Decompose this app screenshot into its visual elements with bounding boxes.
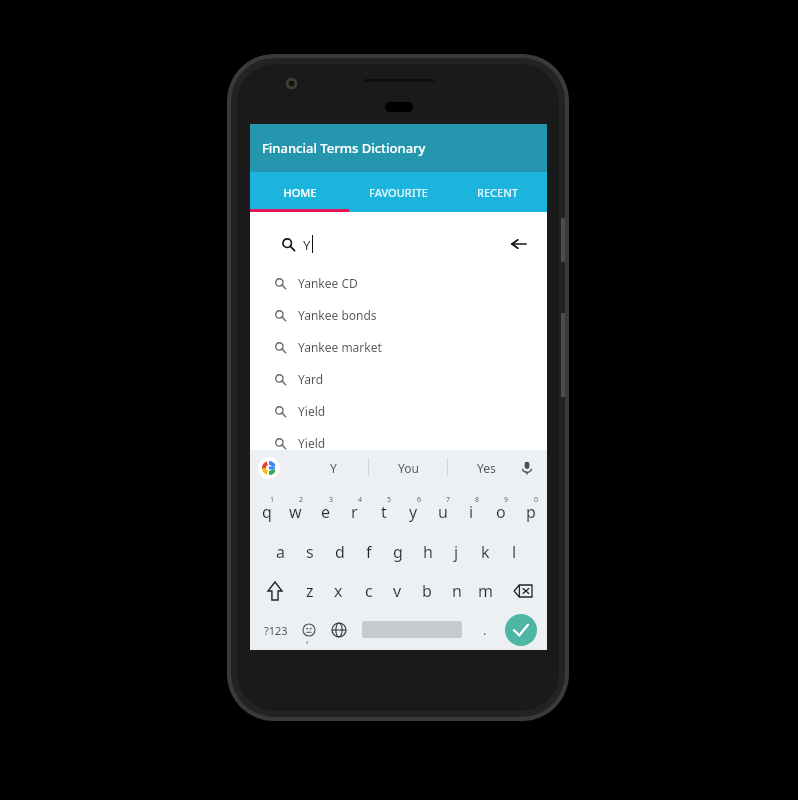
staticText: 8 xyxy=(475,495,480,505)
staticText: 4 xyxy=(358,495,363,505)
button[interactable]: Financial Terms Dictionary xyxy=(250,124,547,172)
button[interactable]: h xyxy=(414,534,441,570)
button[interactable]: ?123 xyxy=(258,614,294,646)
staticText: ?123 xyxy=(264,623,288,638)
staticText: d xyxy=(335,541,345,563)
button[interactable]: Yard xyxy=(264,363,533,395)
button[interactable]: v xyxy=(384,574,411,608)
staticText: 5 xyxy=(387,495,392,505)
staticText: RECENT xyxy=(477,185,518,200)
staticText: i xyxy=(469,501,474,523)
staticText: Yield xyxy=(298,403,326,419)
staticText: t xyxy=(381,501,387,523)
button[interactable]: g xyxy=(384,534,411,570)
button[interactable]: f xyxy=(355,534,382,570)
button[interactable]: e xyxy=(312,494,339,530)
button[interactable]: n xyxy=(443,574,470,608)
staticText: n xyxy=(452,580,462,602)
button[interactable]: Y xyxy=(308,452,358,484)
staticText: Yard xyxy=(298,371,324,387)
staticText: q xyxy=(262,501,272,523)
button[interactable]: j xyxy=(443,534,470,570)
button[interactable]: Yes xyxy=(461,452,511,484)
button[interactable]: l xyxy=(501,534,528,570)
button[interactable]: FAVOURITE xyxy=(349,172,448,212)
staticText: 9 xyxy=(504,495,509,505)
button[interactable]: RECENT xyxy=(448,172,547,212)
staticText: Yankee bonds xyxy=(298,307,377,323)
button[interactable]: x xyxy=(325,574,352,608)
staticText: r xyxy=(351,501,358,523)
staticText: 2 xyxy=(299,495,304,505)
staticText: k xyxy=(481,541,490,563)
button[interactable]: t xyxy=(370,494,397,530)
staticText: o xyxy=(496,501,506,523)
button[interactable]: u xyxy=(429,494,456,530)
staticText: v xyxy=(393,580,402,602)
staticText: g xyxy=(393,541,403,563)
button[interactable]: HOME xyxy=(250,172,349,212)
staticText: Financial Terms Dictionary xyxy=(262,139,426,157)
button[interactable]: s xyxy=(296,534,323,570)
button[interactable]: Search xyxy=(505,614,537,646)
button[interactable]: Change language xyxy=(326,614,352,646)
button[interactable]: a xyxy=(267,534,294,570)
button[interactable]: Voice input xyxy=(516,457,538,479)
button[interactable]: Yield xyxy=(264,427,533,459)
button[interactable]: r xyxy=(341,494,368,530)
staticText: FAVOURITE xyxy=(369,185,428,200)
button[interactable]: c xyxy=(355,574,382,608)
staticText: w xyxy=(289,501,302,523)
staticText: 3 xyxy=(329,495,334,505)
button[interactable]: Yankee bonds xyxy=(264,299,533,331)
staticText: b xyxy=(422,580,432,602)
staticText: . xyxy=(483,621,487,639)
staticText: Yes xyxy=(477,460,496,476)
staticText: p xyxy=(526,501,536,523)
button[interactable]: Emoji xyxy=(297,614,321,646)
staticText: 1 xyxy=(270,495,275,505)
button[interactable]: Backspace xyxy=(507,574,539,608)
staticText: a xyxy=(276,541,285,563)
button[interactable]: Yankee market xyxy=(264,331,533,363)
staticText: s xyxy=(306,541,314,563)
button[interactable]: d xyxy=(326,534,353,570)
button[interactable]: k xyxy=(472,534,499,570)
button[interactable]: q xyxy=(253,494,280,530)
staticText: f xyxy=(366,541,372,563)
button[interactable]: Yield xyxy=(264,395,533,427)
staticText: u xyxy=(438,501,448,523)
button[interactable]: b xyxy=(413,574,440,608)
staticText: e xyxy=(321,501,331,523)
button[interactable]: Shift xyxy=(260,574,290,608)
button[interactable]: Y xyxy=(267,224,529,264)
button[interactable]: z xyxy=(296,574,323,608)
staticText: x xyxy=(334,580,343,602)
button[interactable]: i xyxy=(458,494,485,530)
button[interactable]: w xyxy=(282,494,309,530)
staticText: Yankee market xyxy=(298,339,382,355)
button[interactable]: Yankee CD xyxy=(264,267,533,299)
staticText: 7 xyxy=(446,495,451,505)
staticText: j xyxy=(454,541,459,563)
button[interactable]: Back xyxy=(508,233,530,255)
staticText: h xyxy=(423,541,433,563)
button[interactable]: . xyxy=(472,614,498,646)
staticText: c xyxy=(365,580,373,602)
staticText: Yield xyxy=(298,435,326,451)
staticText: Y xyxy=(330,460,337,476)
button[interactable]: p xyxy=(517,494,544,530)
staticText: 6 xyxy=(417,495,422,505)
staticText: y xyxy=(409,501,418,523)
staticText: 0 xyxy=(534,495,539,505)
button[interactable]: You xyxy=(383,452,433,484)
button[interactable]: o xyxy=(487,494,514,530)
staticText: You xyxy=(398,460,419,476)
button[interactable]: y xyxy=(400,494,427,530)
staticText: Yankee CD xyxy=(298,275,358,291)
button[interactable]: Google xyxy=(258,457,280,479)
staticText: m xyxy=(478,580,493,602)
button[interactable]: m xyxy=(472,574,499,608)
staticText: z xyxy=(306,580,314,602)
